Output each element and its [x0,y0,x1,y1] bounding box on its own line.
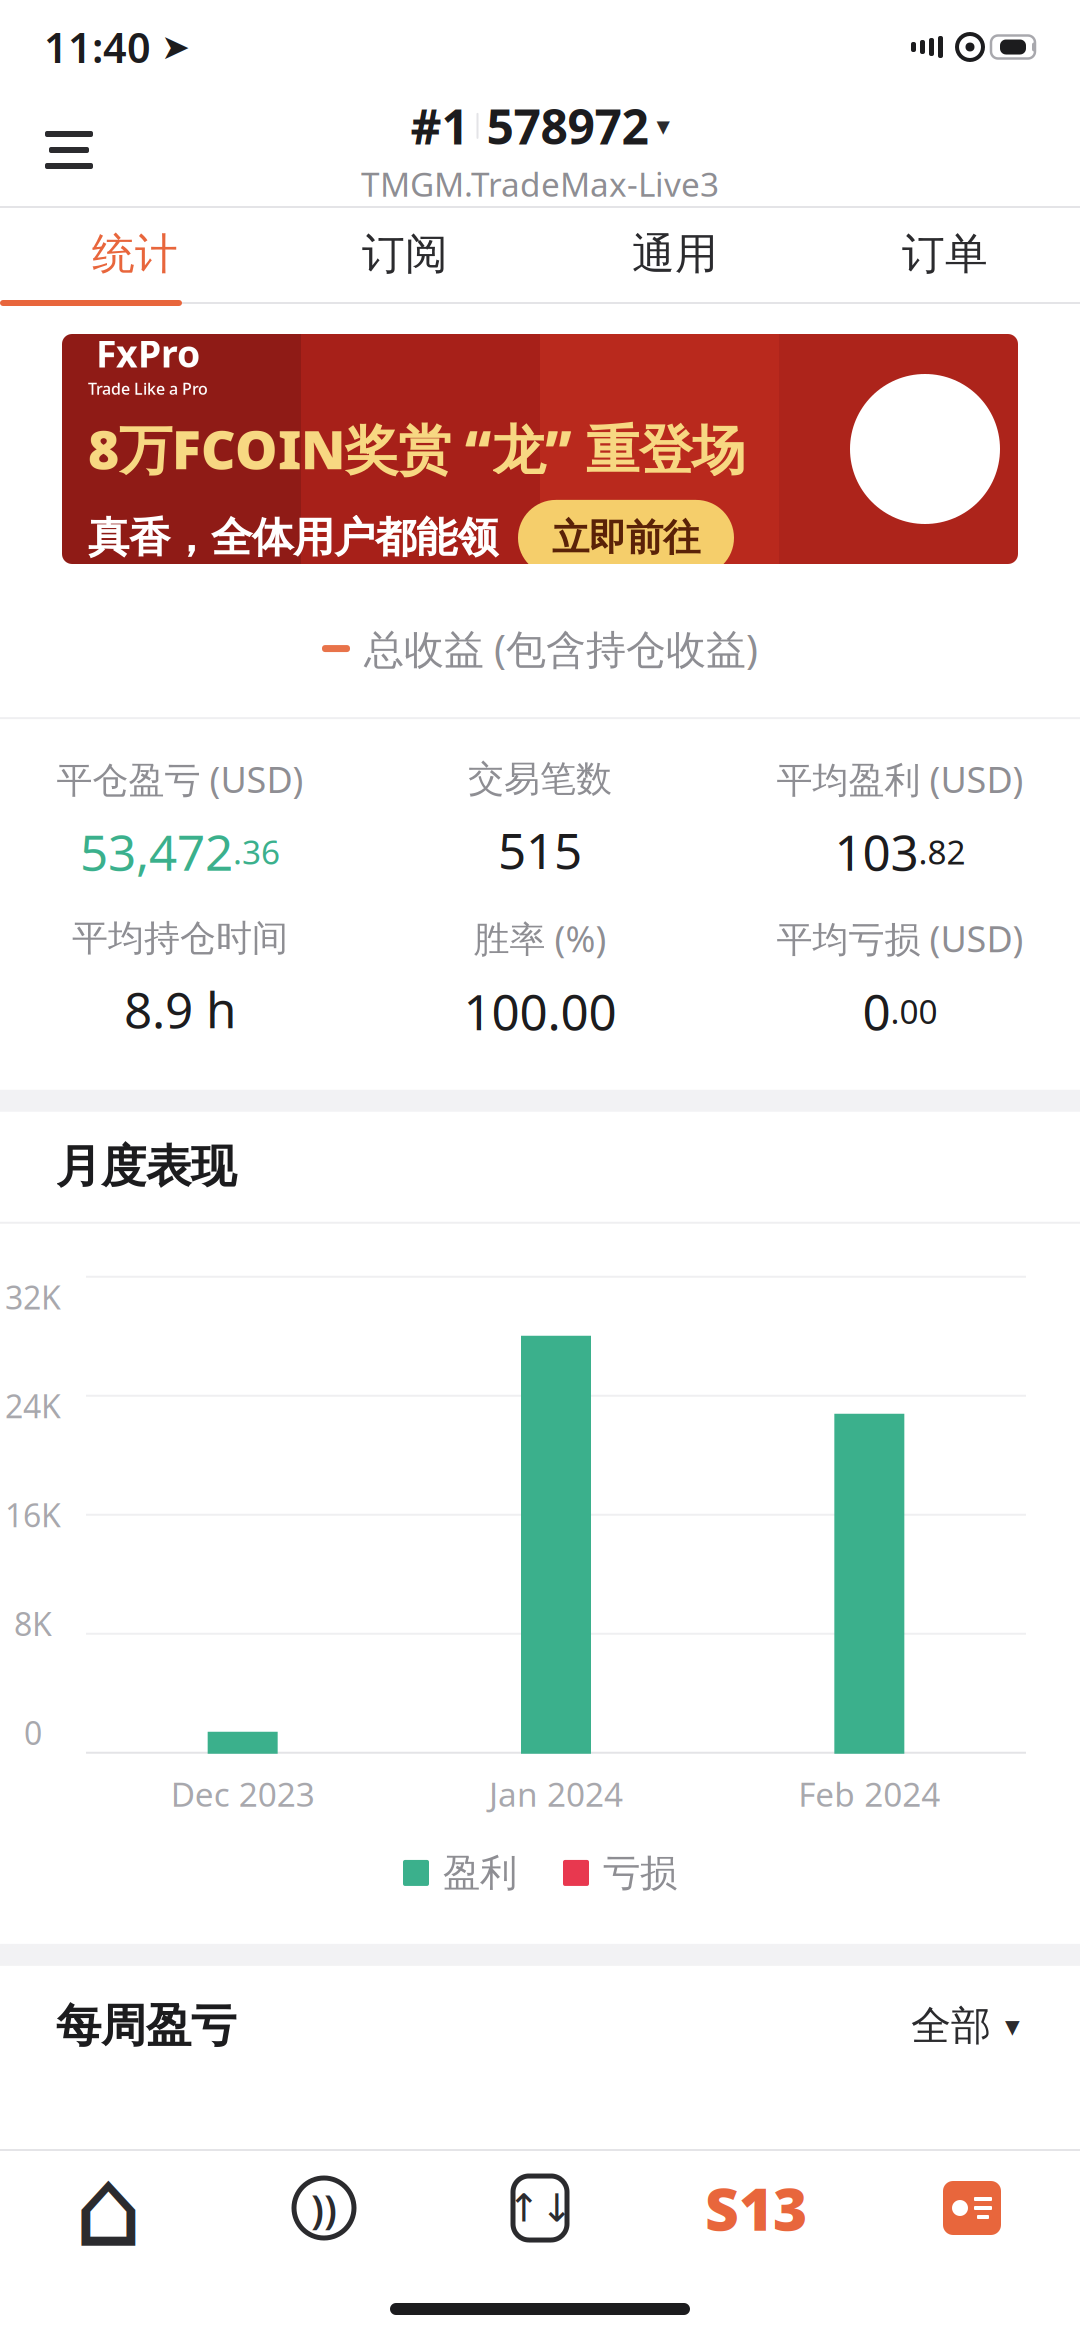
staticText: 平均盈利 (USD) [776,755,1023,803]
staticText: 32K [5,1276,61,1318]
staticText: 8K [14,1602,52,1645]
button[interactable]: Home [0,2151,216,2265]
staticText: 53,472 [80,819,233,884]
staticText: 平均亏损 (USD) [776,914,1023,962]
button[interactable]: 统计 [0,208,270,300]
staticText: ↑ [507,2186,539,2230]
staticText: TMGM.TradeMax-Live3 [361,162,719,206]
staticText: 11:40 [44,20,151,74]
button[interactable]: 订阅 [270,208,540,300]
staticText: 全部 [911,2001,991,2050]
staticText: Dec 2023 [171,1772,315,1816]
button[interactable]: 订单 [810,208,1080,300]
staticText: FxPro [96,328,200,378]
staticText: #1 [410,94,468,158]
staticText: ▾ [1005,2009,1020,2042]
staticText: ▾ [656,111,669,141]
button[interactable]: S13 [648,2151,864,2265]
staticText: 总收益 (包含持仓收益) [364,622,758,675]
button[interactable]: Trade [432,2151,648,2265]
staticText: 8万FCOIN奖赏 “龙” 重登场 [88,413,745,484]
staticText: 立即前往 [552,515,700,561]
staticText: Feb 2024 [798,1772,940,1816]
staticText: 0 [862,978,890,1044]
staticText: 103 [834,819,918,884]
staticText: 订阅 [362,228,448,280]
staticText: 24K [5,1385,61,1427]
staticText: )) [311,2181,337,2234]
staticText: ↓ [540,2186,572,2230]
staticText: Jan 2024 [489,1772,623,1816]
staticText: 每周盈亏 [56,1998,236,2054]
staticText: .36 [233,829,280,874]
staticText: ⌂ [73,2146,142,2270]
staticText: 100.00 [463,978,616,1044]
staticText: 月度表现 [56,1139,236,1195]
staticText: .00 [890,989,937,1033]
staticText: 胜率 (%) [473,914,606,962]
staticText: 515 [498,817,582,883]
button[interactable]: 全部 [907,1989,1024,2062]
button[interactable]: 通用 [540,208,810,300]
staticText: 盈利 [443,1850,517,1896]
staticText: .82 [918,829,965,874]
staticText: 真香，全体用户都能领 [88,512,498,563]
staticText: 平仓盈亏 (USD) [56,755,303,803]
staticText: ➤ [161,27,190,67]
button[interactable]: Menu [24,105,114,195]
button[interactable]: Profile [864,2151,1080,2265]
staticText: S13 [705,2169,807,2247]
staticText: 亏损 [603,1850,677,1896]
staticText: 8.9 h [124,976,236,1042]
staticText: 统计 [92,228,178,280]
staticText: 0 [24,1711,42,1754]
staticText: 交易笔数 [468,757,612,801]
staticText: 订单 [902,228,988,280]
staticText: 平均持仓时间 [72,916,288,960]
button[interactable]: FxPro promotion [0,306,1080,564]
staticText: Trade Like a Pro [88,378,208,399]
staticText: 通用 [632,228,718,280]
button[interactable]: Signals [216,2151,432,2265]
staticText: 16K [5,1493,61,1536]
staticText: 578972 [486,94,648,158]
